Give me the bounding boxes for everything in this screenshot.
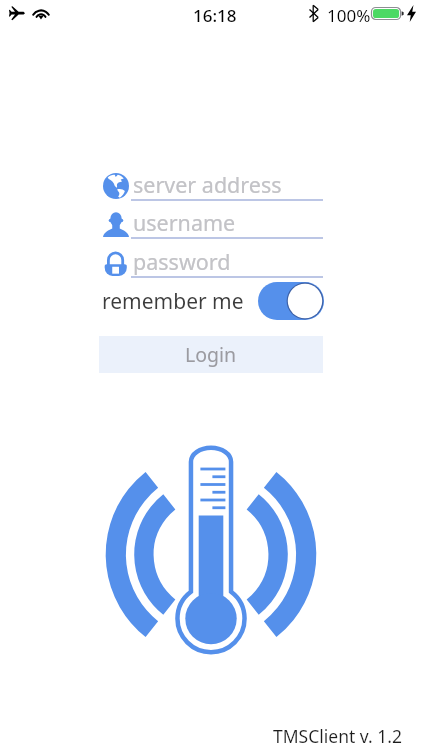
staticText: Login	[185, 341, 237, 368]
staticText: password	[133, 247, 231, 275]
staticText: username	[133, 208, 236, 236]
button[interactable]: username	[103, 211, 323, 239]
button[interactable]: remember me toggle	[258, 282, 324, 320]
staticText: 16:18	[193, 4, 237, 27]
staticText: server address	[133, 170, 282, 198]
button[interactable]: server address	[103, 173, 323, 201]
button[interactable]: password	[103, 250, 323, 278]
button[interactable]: Login	[99, 336, 323, 373]
staticText: remember me	[102, 287, 244, 316]
staticText: TMSClient v. 1.2	[273, 724, 402, 748]
staticText: 100%	[327, 4, 371, 27]
button[interactable]: remember me	[99, 281, 324, 321]
